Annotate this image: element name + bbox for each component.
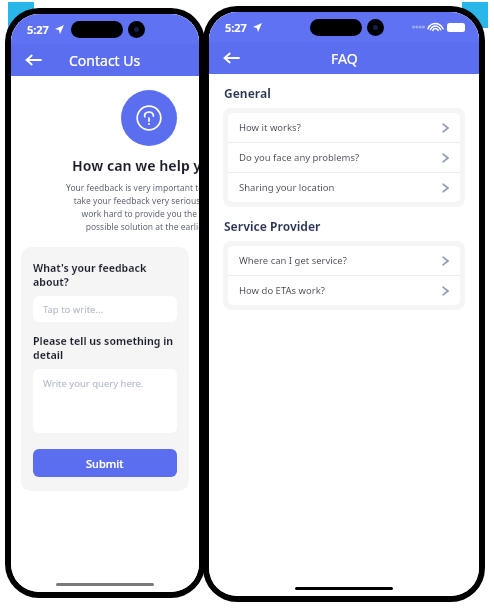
staticText: Submit: [86, 456, 124, 471]
button[interactable]: Sharing your location: [228, 173, 460, 202]
staticText: Your feedback is very important to us. W…: [65, 182, 199, 233]
button[interactable]: Where can I get service?: [228, 246, 460, 275]
staticText: 5:27: [27, 22, 49, 37]
button[interactable]: How do ETAs work?: [228, 276, 460, 305]
button[interactable]: Write your query here.: [33, 369, 177, 433]
staticText: Write your query here.: [43, 377, 144, 390]
staticText: Contact Us: [69, 51, 141, 70]
staticText: How do ETAs work?: [239, 284, 442, 297]
staticText: How it works?: [239, 121, 442, 134]
button[interactable]: Submit: [33, 449, 177, 477]
staticText: Where can I get service?: [239, 254, 442, 267]
button[interactable]: Back: [215, 42, 247, 74]
staticText: Service Provider: [224, 218, 321, 234]
button[interactable]: Back: [17, 44, 49, 76]
button[interactable]: How it works?: [228, 113, 460, 142]
staticText: Sharing your location: [239, 181, 442, 194]
staticText: Do you face any problems?: [239, 151, 442, 164]
staticText: How can we help you?: [55, 156, 199, 175]
button[interactable]: Do you face any problems?: [228, 143, 460, 172]
staticText: What's your feedback about?: [33, 261, 177, 289]
staticText: General: [224, 85, 271, 101]
staticText: FAQ: [331, 49, 358, 68]
button[interactable]: Tap to write...: [33, 296, 177, 322]
staticText: Tap to write...: [43, 303, 104, 316]
staticText: Please tell us something in detail: [33, 334, 177, 362]
staticText: 5:27: [225, 20, 247, 35]
